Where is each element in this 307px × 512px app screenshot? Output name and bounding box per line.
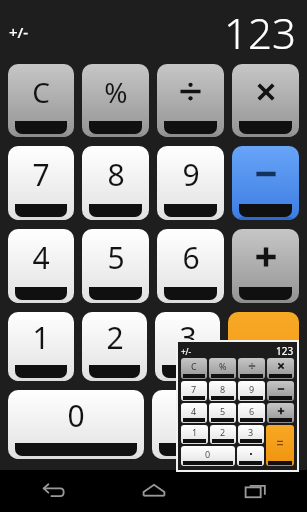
button[interactable]: 6: [238, 403, 265, 423]
staticText: 0: [67, 395, 85, 436]
button[interactable]: %: [209, 358, 236, 379]
button[interactable]: Equals: [228, 312, 299, 459]
button[interactable]: 7: [181, 381, 207, 401]
button[interactable]: C: [181, 358, 207, 379]
button[interactable]: %: [82, 64, 149, 137]
staticText: 4: [191, 405, 197, 417]
staticText: 2: [220, 426, 226, 438]
staticText: 5: [107, 237, 125, 278]
staticText: 9: [182, 154, 200, 195]
staticText: 1: [192, 426, 198, 438]
button[interactable]: 9: [157, 146, 224, 220]
staticText: %: [104, 73, 128, 111]
button[interactable]: 5: [209, 403, 236, 423]
staticText: 123: [224, 4, 296, 61]
button[interactable]: [267, 358, 294, 379]
button[interactable]: 4: [181, 403, 207, 423]
button[interactable]: Add: [232, 229, 299, 303]
staticText: +/-: [9, 22, 29, 42]
button[interactable]: Home: [103, 470, 205, 512]
button[interactable]: 5: [82, 229, 149, 303]
button[interactable]: Back: [0, 470, 103, 512]
staticText: 5: [220, 405, 226, 417]
button[interactable]: 3: [155, 312, 220, 381]
button[interactable]: 2: [210, 425, 236, 444]
staticText: 3: [248, 426, 254, 438]
staticText: 2: [106, 317, 124, 358]
button[interactable]: 1: [8, 312, 74, 381]
button[interactable]: 7: [8, 146, 74, 220]
staticText: 7: [32, 154, 50, 195]
staticText: C: [32, 73, 50, 111]
button[interactable]: Subtract: [232, 146, 299, 220]
staticText: 8: [220, 383, 226, 395]
button[interactable]: [267, 403, 294, 423]
button[interactable]: 0: [181, 446, 235, 466]
staticText: 3: [179, 317, 197, 358]
staticText: 0: [205, 448, 211, 460]
button[interactable]: 8: [82, 146, 149, 220]
button[interactable]: 4: [8, 229, 74, 303]
button[interactable]: 1: [181, 425, 208, 444]
button[interactable]: Toggle sign: [6, 17, 32, 47]
button[interactable]: [267, 381, 294, 401]
button[interactable]: 2: [82, 312, 147, 381]
staticText: 123: [276, 344, 294, 358]
staticText: 6: [182, 237, 200, 278]
button[interactable]: 9: [238, 381, 265, 401]
button[interactable]: 3: [238, 425, 264, 444]
button[interactable]: Divide: [157, 64, 224, 137]
staticText: +/-: [181, 346, 192, 357]
staticText: 6: [249, 405, 255, 417]
button[interactable]: Multiply: [232, 64, 299, 137]
staticText: 9: [249, 383, 255, 395]
button[interactable]: C: [8, 64, 74, 137]
button[interactable]: Recent apps: [205, 470, 307, 512]
staticText: C: [191, 360, 197, 372]
button[interactable]: 0: [8, 390, 144, 459]
staticText: 8: [107, 154, 125, 195]
button[interactable]: [237, 446, 264, 466]
button[interactable]: [238, 358, 265, 379]
button[interactable]: 6: [157, 229, 224, 303]
button[interactable]: [266, 425, 294, 466]
staticText: 1: [32, 317, 50, 358]
staticText: %: [219, 360, 227, 372]
staticText: 4: [32, 237, 50, 278]
button[interactable]: Decimal point: [152, 390, 220, 459]
staticText: 7: [191, 383, 197, 395]
button[interactable]: 8: [209, 381, 236, 401]
